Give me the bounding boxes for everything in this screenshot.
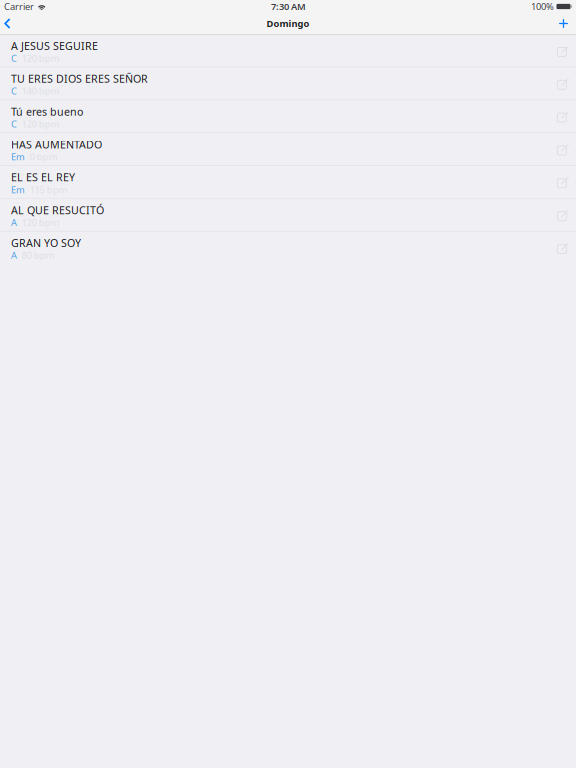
button[interactable]: Edit Tú eres bueno: [557, 110, 569, 122]
staticText: 80 bpm: [22, 249, 55, 261]
button[interactable]: TU ERES DIOS ERES SEÑOR: [0, 67, 576, 100]
button[interactable]: Edit TU ERES DIOS ERES SEÑOR: [557, 77, 569, 89]
button[interactable]: Edit GRAN YO SOY: [557, 242, 569, 253]
staticText: C: [11, 52, 17, 64]
button[interactable]: A JESUS SEGUIRE: [0, 34, 576, 67]
staticText: GRAN YO SOY: [11, 236, 81, 250]
staticText: HAS AUMENTADO: [11, 137, 102, 151]
staticText: A: [11, 216, 17, 229]
staticText: 120 bpm: [22, 52, 60, 64]
staticText: 7:30 AM: [271, 0, 306, 13]
staticText: 140 bpm: [22, 85, 60, 97]
staticText: Em: [11, 150, 25, 163]
staticText: Carrier: [4, 0, 34, 13]
staticText: AL QUE RESUCITÓ: [11, 203, 104, 217]
staticText: TU ERES DIOS ERES SEÑOR: [11, 72, 148, 86]
button[interactable]: Edit EL ES EL REY: [557, 176, 569, 188]
button[interactable]: AL QUE RESUCITÓ: [0, 199, 576, 232]
staticText: EL ES EL REY: [11, 170, 75, 184]
button[interactable]: Edit A JESUS SEGUIRE: [557, 45, 569, 56]
staticText: A: [11, 249, 17, 261]
button[interactable]: Edit HAS AUMENTADO: [557, 143, 569, 155]
staticText: 120 bpm: [22, 216, 60, 229]
button[interactable]: Back: [0, 12, 21, 34]
staticText: 120 bpm: [22, 118, 60, 130]
button[interactable]: Add song: [549, 12, 576, 34]
staticText: 100%: [531, 0, 554, 13]
button[interactable]: Edit AL QUE RESUCITÓ: [557, 209, 569, 221]
staticText: Em: [11, 183, 25, 196]
staticText: C: [11, 85, 17, 97]
staticText: 115 bpm: [30, 183, 68, 196]
staticText: Domingo: [266, 17, 309, 30]
button[interactable]: EL ES EL REY: [0, 166, 576, 199]
button[interactable]: HAS AUMENTADO: [0, 133, 576, 166]
staticText: Tú eres bueno: [11, 104, 83, 119]
staticText: A JESUS SEGUIRE: [11, 39, 98, 53]
staticText: 0 bpm: [30, 150, 58, 163]
button[interactable]: GRAN YO SOY: [0, 232, 576, 264]
staticText: C: [11, 118, 17, 130]
button[interactable]: Tú eres bueno: [0, 100, 576, 133]
